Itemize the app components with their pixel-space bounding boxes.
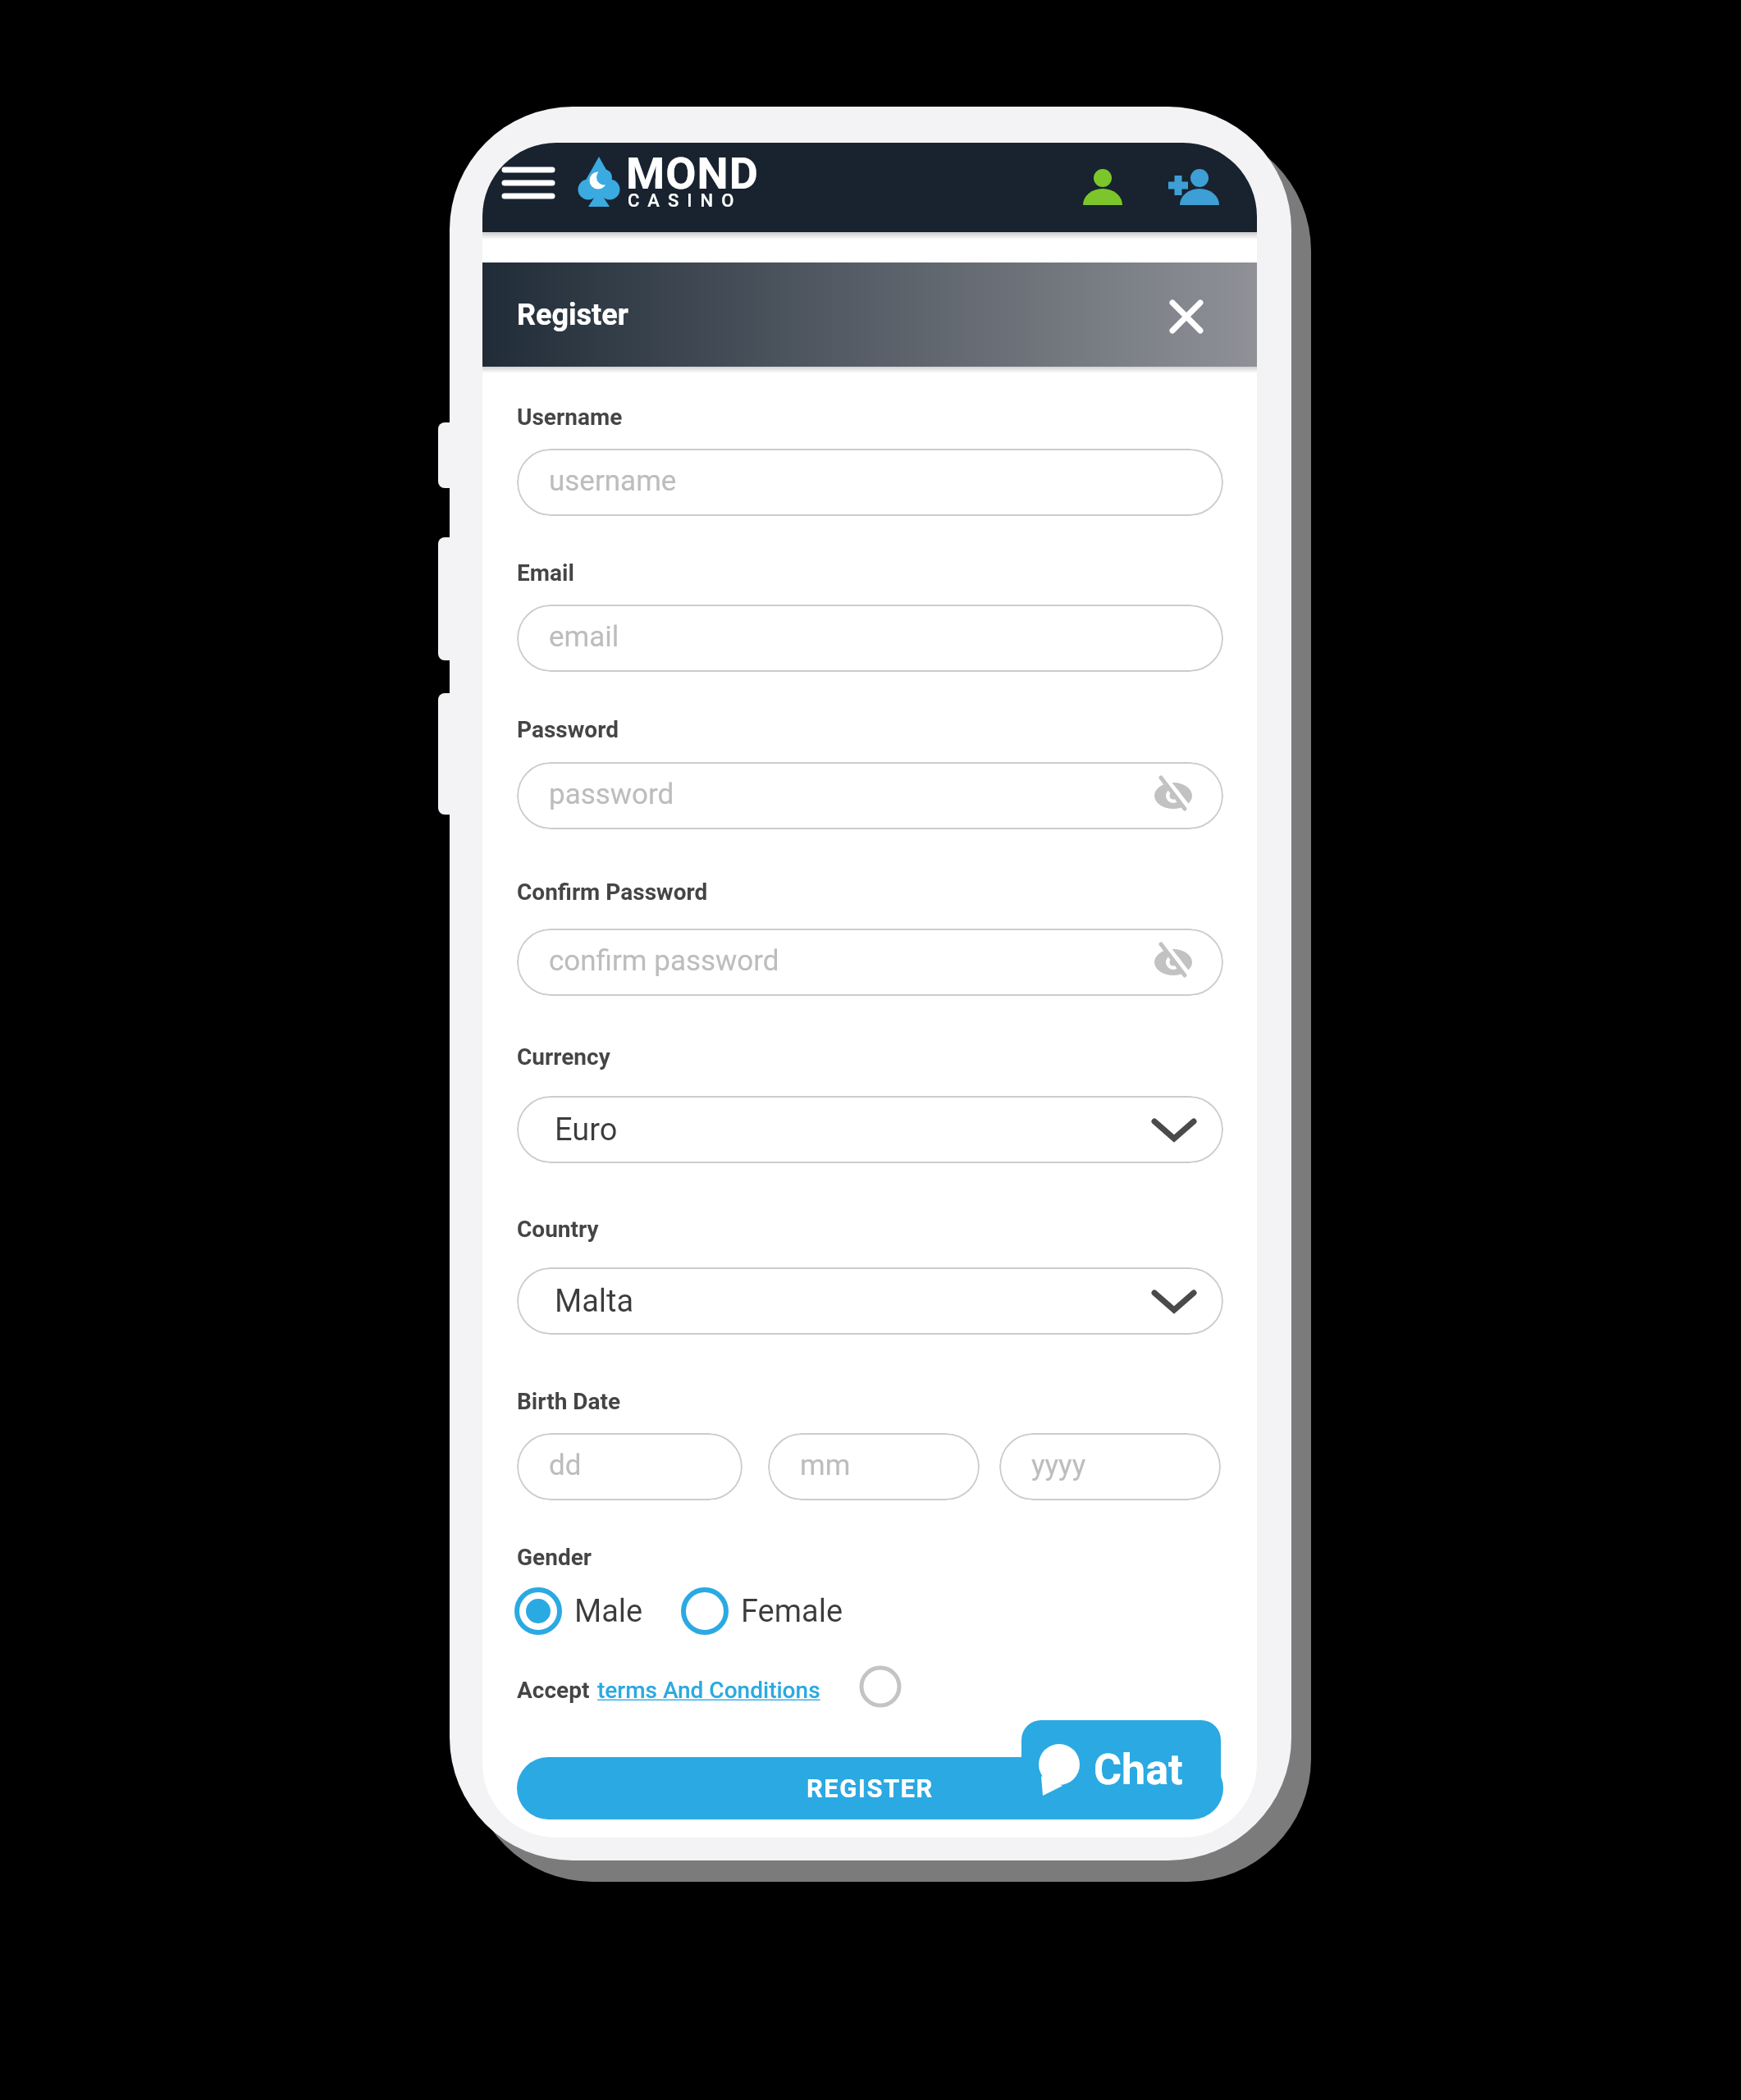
staticText: mm	[800, 1449, 851, 1482]
staticText: dd	[549, 1449, 582, 1482]
staticText: Female	[741, 1593, 843, 1630]
staticText: MOND	[626, 148, 759, 192]
staticText: Password	[517, 716, 619, 743]
staticText: Username	[517, 404, 623, 431]
staticText: Register	[517, 298, 628, 332]
staticText: REGISTER	[807, 1774, 934, 1803]
staticText: email	[549, 620, 619, 654]
staticText: CASINO	[628, 190, 743, 210]
staticText: Country	[517, 1216, 599, 1243]
staticText: terms And Conditions	[597, 1677, 820, 1704]
staticText: yyyy	[1031, 1449, 1086, 1482]
staticText: Email	[517, 559, 574, 587]
staticText: Male	[574, 1593, 643, 1630]
staticText: Gender	[517, 1544, 592, 1571]
staticText: confirm password	[549, 944, 779, 978]
staticText: Euro	[555, 1112, 618, 1148]
staticText: Malta	[555, 1283, 634, 1320]
staticText: Currency	[517, 1043, 610, 1071]
staticText: Accept	[517, 1677, 590, 1704]
staticText: password	[549, 778, 674, 811]
staticText: Birth Date	[517, 1388, 621, 1415]
staticText: Confirm Password	[517, 879, 708, 906]
staticText: Chat	[1094, 1745, 1183, 1795]
staticText: username	[549, 464, 677, 498]
